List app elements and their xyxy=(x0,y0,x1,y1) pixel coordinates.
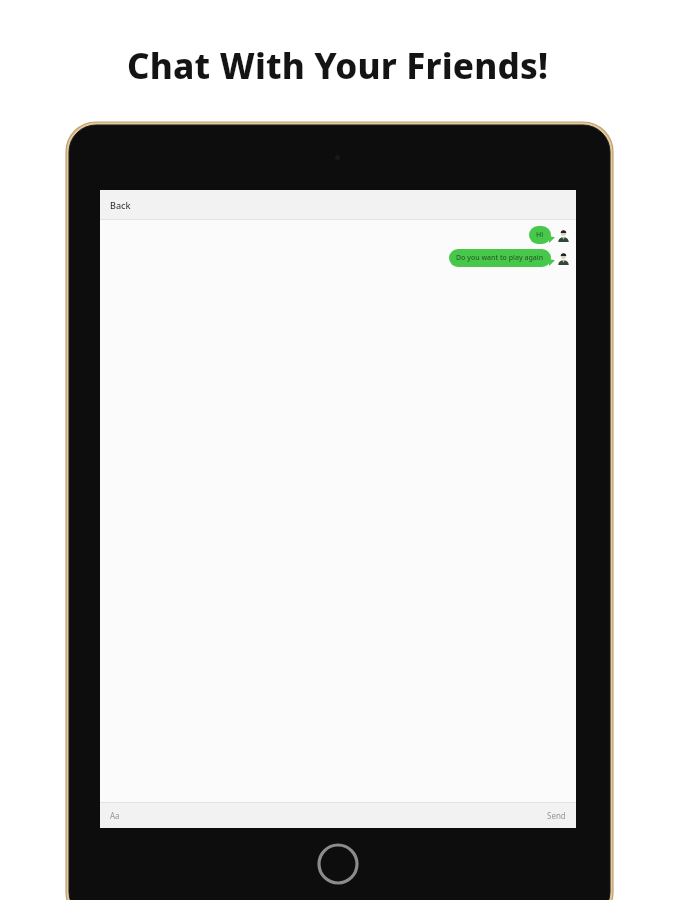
other: Contact avatar xyxy=(557,252,570,265)
other: Contact avatar xyxy=(557,229,570,242)
staticText: Aa xyxy=(110,810,120,821)
button[interactable]: Aa xyxy=(110,802,120,828)
button[interactable]: Do you want to play again xyxy=(100,249,573,267)
staticText: Hi xyxy=(536,230,544,240)
staticText: Send xyxy=(547,810,566,821)
button[interactable]: Back xyxy=(110,190,131,220)
staticText: Chat With Your Friends! xyxy=(127,42,549,90)
staticText: Back xyxy=(110,199,131,211)
button[interactable]: Send xyxy=(547,802,566,828)
staticText: Do you want to play again xyxy=(456,253,544,263)
button[interactable]: Hi xyxy=(100,226,573,244)
button[interactable]: Home xyxy=(316,842,360,886)
